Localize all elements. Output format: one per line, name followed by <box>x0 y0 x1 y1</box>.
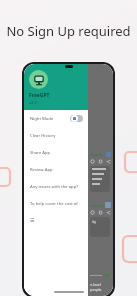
staticText: FreeGPT <box>29 92 50 99</box>
button[interactable]: Night Mode toggle <box>70 115 83 122</box>
button[interactable]: Send <box>104 272 111 279</box>
button[interactable]: Night Mode <box>24 110 88 127</box>
staticText: To help cover the cost of the app <box>30 201 83 207</box>
staticText: Night Mode <box>30 116 54 122</box>
button[interactable]: Copy <box>98 159 103 164</box>
staticText: Any issues with the app? <box>30 184 79 190</box>
button[interactable]: Speak <box>90 210 95 215</box>
staticText: n-level people. <box>90 282 113 292</box>
staticText: Review App <box>30 167 53 173</box>
staticText: Share App <box>30 150 51 156</box>
button[interactable]: To help cover the cost of the app <box>24 195 88 212</box>
staticText: answer <box>90 152 102 157</box>
button[interactable]: Copy <box>98 210 103 215</box>
button[interactable]: Speak <box>90 159 95 164</box>
staticText: is open s <box>90 203 105 208</box>
staticText: ☰ <box>30 217 35 223</box>
button[interactable]: Share App <box>24 144 88 161</box>
staticText: ity <box>92 219 96 224</box>
button[interactable]: ☰ <box>24 212 88 228</box>
button[interactable]: answer <box>88 64 113 296</box>
button[interactable]: Share <box>106 159 111 164</box>
button[interactable]: Clear History <box>24 127 88 144</box>
staticText: v2.0 <box>29 100 37 105</box>
button[interactable]: Review App <box>24 161 88 178</box>
button[interactable]: Share <box>106 210 111 215</box>
button[interactable]: Any issues with the app? <box>24 178 88 195</box>
staticText: Clear History <box>30 133 56 139</box>
staticText: No Sign Up required <box>0 22 137 40</box>
